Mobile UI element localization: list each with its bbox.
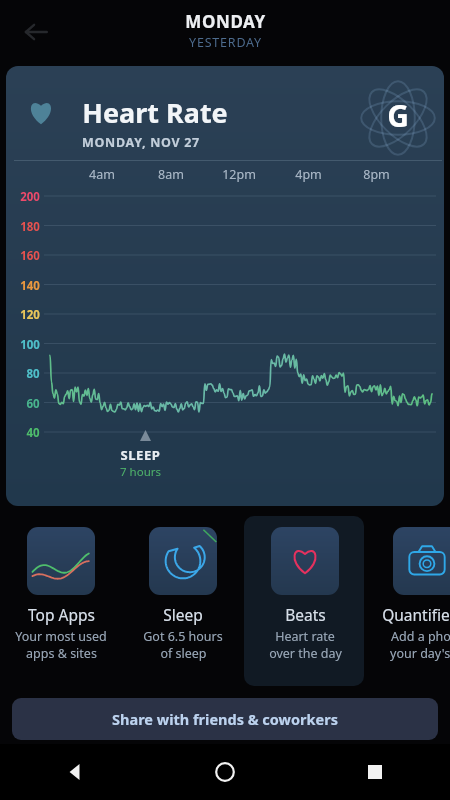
staticText: over the day: [269, 645, 342, 662]
staticText: Share with friends & coworkers: [112, 709, 338, 729]
staticText: Got 6.5 hours: [143, 628, 223, 645]
staticText: G: [387, 95, 409, 131]
staticText: 4pm: [295, 166, 322, 183]
button[interactable]: Sleep: [122, 516, 244, 662]
staticText: SLEEP: [120, 446, 161, 464]
button[interactable]: Back: [0, 744, 150, 800]
staticText: 4am: [89, 166, 115, 183]
staticText: 100: [20, 337, 40, 353]
staticText: 40: [26, 425, 40, 441]
staticText: 7 hours: [120, 464, 161, 480]
staticText: apps & sites: [26, 645, 97, 662]
staticText: 140: [20, 278, 40, 294]
button[interactable]: Top Apps: [0, 516, 122, 662]
staticText: 8am: [158, 166, 184, 183]
staticText: 180: [20, 219, 40, 235]
staticText: 8pm: [363, 166, 390, 183]
staticText: Your most used: [15, 628, 107, 645]
staticText: 200: [20, 189, 40, 205]
button[interactable]: Quantified S: [366, 516, 450, 662]
staticText: 60: [26, 396, 40, 412]
button[interactable]: Home: [150, 744, 300, 800]
staticText: 80: [26, 366, 40, 382]
staticText: of sleep: [160, 645, 207, 662]
staticText: MONDAY: [185, 10, 266, 33]
button[interactable]: Share with friends & coworkers: [12, 698, 438, 740]
staticText: Top Apps: [28, 604, 95, 625]
staticText: Add a photo: [391, 628, 450, 645]
staticText: Beats: [285, 604, 326, 625]
button[interactable]: Back: [14, 10, 58, 54]
button[interactable]: Recents: [300, 744, 450, 800]
staticText: 160: [20, 248, 40, 264]
staticText: Sleep: [163, 604, 203, 625]
staticText: Heart Rate: [82, 94, 228, 131]
staticText: 12pm: [222, 166, 256, 183]
staticText: 120: [20, 307, 40, 323]
button[interactable]: Beats: [244, 516, 366, 662]
staticText: your day's st: [390, 645, 450, 662]
staticText: MONDAY, NOV 27: [82, 134, 200, 151]
staticText: Heart rate: [275, 628, 335, 645]
staticText: YESTERDAY: [189, 34, 262, 51]
staticText: Quantified S: [382, 604, 450, 625]
